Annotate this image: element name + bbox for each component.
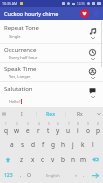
button[interactable]: d (28, 137, 38, 152)
staticText: > (75, 173, 78, 178)
button[interactable]: Salutation (0, 82, 103, 107)
staticText: 4 (38, 122, 40, 126)
staticText: c (41, 155, 45, 164)
staticText: p (96, 126, 100, 135)
button[interactable]: 7 (63, 121, 73, 137)
button[interactable]: 123 (0, 167, 16, 183)
button[interactable]: 9 (83, 121, 93, 137)
button[interactable]: a (6, 137, 17, 152)
button[interactable]: , (16, 167, 25, 183)
button[interactable]: Space (33, 167, 72, 183)
staticText: y (56, 126, 60, 135)
staticText: f (42, 140, 45, 149)
button[interactable]: v (48, 152, 58, 167)
button[interactable]: Rex (37, 107, 65, 121)
staticText: i (77, 126, 79, 135)
staticText: Salutation (4, 85, 33, 93)
staticText: Yes, Longer (9, 74, 31, 79)
staticText: g (51, 140, 55, 149)
staticText: Repeat Tone (4, 24, 39, 32)
staticText: o (86, 126, 90, 135)
staticText: Single (9, 34, 21, 39)
staticText: h (61, 140, 66, 149)
button[interactable]: Menu (0, 107, 7, 121)
staticText: 9 (87, 122, 89, 126)
staticText: k (81, 140, 85, 149)
button[interactable]: k (78, 137, 88, 152)
button[interactable]: x (27, 152, 38, 167)
button[interactable]: Account (93, 10, 100, 17)
staticText: 8 (77, 122, 79, 126)
staticText: n (71, 155, 76, 164)
staticText: . (83, 172, 85, 179)
staticText: I (21, 111, 23, 118)
staticText: 2 (16, 122, 18, 126)
staticText: z (20, 155, 24, 164)
button[interactable]: Favorite (80, 9, 89, 18)
button[interactable]: j (68, 137, 78, 152)
staticText: l (92, 140, 94, 149)
button[interactable]: I (7, 107, 36, 121)
button[interactable]: c (38, 152, 48, 167)
staticText: Speak Time (4, 65, 37, 73)
button[interactable]: Speak Time (0, 63, 103, 81)
button[interactable]: Repeat Tone (0, 20, 103, 43)
button[interactable]: Emoji (25, 167, 33, 183)
staticText: 3 (27, 122, 29, 126)
button[interactable]: z (16, 152, 27, 167)
button[interactable]: l (88, 137, 98, 152)
staticText: Rex (46, 111, 56, 118)
button[interactable]: 5 (43, 121, 53, 137)
staticText: v (51, 155, 55, 164)
button[interactable]: b (58, 152, 68, 167)
staticText: 1 (5, 122, 7, 126)
button[interactable]: Shift (0, 152, 16, 167)
button[interactable]: h (58, 137, 68, 152)
button[interactable]: 0 (93, 121, 103, 137)
button[interactable]: Enter (88, 167, 103, 183)
staticText: Hello! (9, 99, 20, 104)
staticText: Rx (77, 111, 83, 118)
staticText: 6 (57, 122, 59, 126)
button[interactable]: 8 (73, 121, 83, 137)
staticText: Cuckoo hourly chime (4, 10, 59, 17)
button[interactable]: 4 (33, 121, 43, 137)
staticText: 123 (4, 172, 13, 179)
button[interactable]: Backspace (88, 152, 103, 167)
staticText: t (47, 126, 50, 135)
staticText: 7 (68, 122, 70, 126)
staticText: 12:35 (77, 2, 85, 6)
staticText: Occurrence (4, 46, 37, 54)
staticText: s (21, 140, 25, 149)
staticText: Every half hour (9, 55, 38, 60)
button[interactable]: Rx (66, 107, 94, 121)
button[interactable]: Occurrence (0, 44, 103, 62)
staticText: 10:35 AM (2, 1, 18, 6)
button[interactable]: s (17, 137, 28, 152)
button[interactable]: . (80, 167, 88, 183)
staticText: , (20, 172, 22, 179)
staticText: 0 (97, 122, 99, 126)
staticText: d (31, 140, 35, 149)
staticText: e (26, 126, 30, 135)
staticText: u (66, 126, 71, 135)
button[interactable]: > (72, 167, 80, 183)
staticText: m (80, 155, 87, 164)
staticText: b (61, 155, 65, 164)
button[interactable]: g (48, 137, 58, 152)
staticText: English (46, 173, 60, 178)
button[interactable]: f (38, 137, 48, 152)
staticText: q (4, 126, 8, 135)
button[interactable]: 6 (53, 121, 63, 137)
button[interactable]: 2 (11, 121, 22, 137)
staticText: a (10, 140, 14, 149)
staticText: x (31, 155, 35, 164)
staticText: 5 (48, 122, 50, 126)
staticText: r (37, 126, 40, 135)
staticText: w (14, 126, 20, 135)
button[interactable]: 3 (22, 121, 33, 137)
button[interactable]: n (68, 152, 78, 167)
button[interactable]: More suggestions (94, 107, 103, 121)
button[interactable]: 1 (0, 121, 11, 137)
button[interactable]: m (78, 152, 88, 167)
